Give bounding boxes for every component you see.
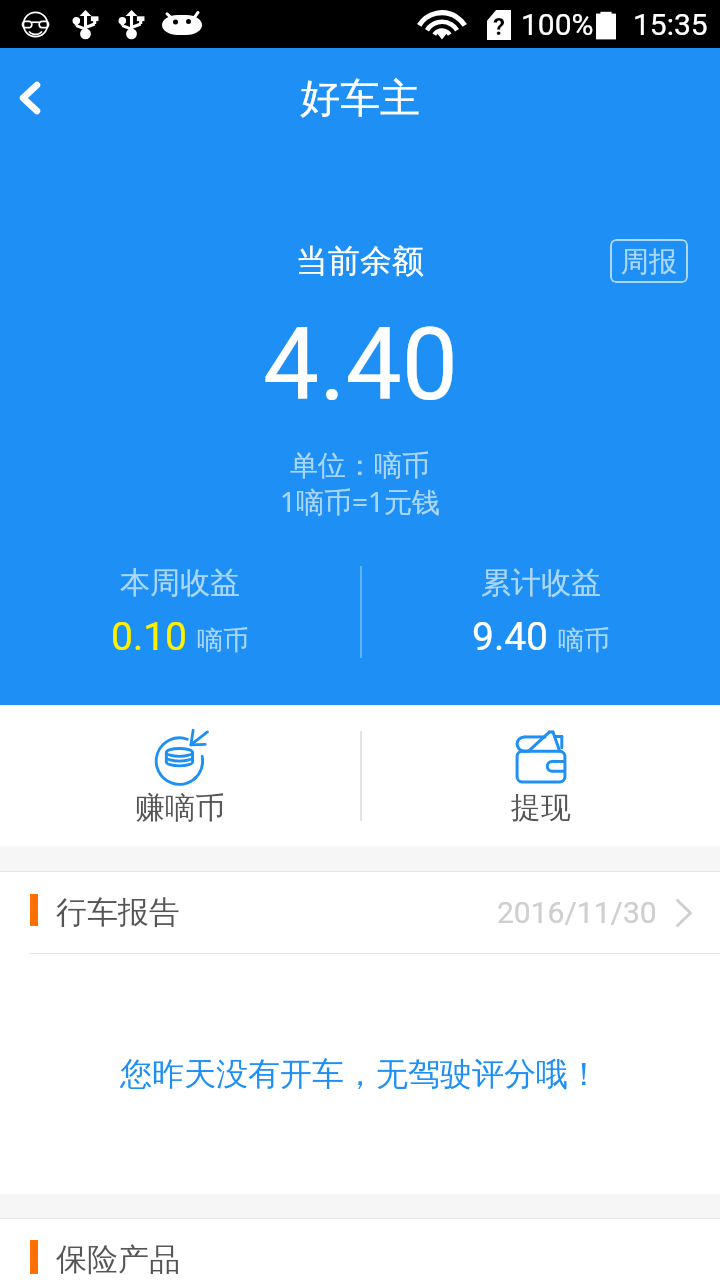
staticText: 单位：嘀币 [290, 448, 430, 483]
staticText: 9.40 [472, 614, 549, 660]
button[interactable]: 行车报告 [0, 872, 720, 953]
staticText: 提现 [511, 789, 571, 827]
staticText: 2016/11/30 [497, 895, 657, 930]
staticText: 保险产品 [56, 1240, 180, 1279]
button[interactable]: Back [0, 48, 60, 148]
staticText: 15:35 [633, 7, 708, 42]
staticText: 好车主 [300, 73, 420, 123]
staticText: 累计收益 [481, 564, 601, 602]
staticText: 赚嘀币 [135, 789, 225, 827]
button[interactable]: 保险产品 [0, 1219, 720, 1280]
staticText: 1嘀币=1元钱 [280, 482, 441, 520]
staticText: 0.10 [111, 614, 188, 660]
staticText: 本周收益 [120, 564, 240, 602]
button[interactable]: 周报 [610, 239, 688, 283]
staticText: ? [493, 13, 505, 41]
button[interactable]: 提现 [361, 705, 720, 846]
staticText: 周报 [621, 244, 677, 279]
staticText: 100% [521, 7, 594, 42]
staticText: 嘀币 [558, 624, 610, 657]
staticText: 当前余额 [296, 241, 424, 281]
button[interactable]: 赚嘀币 [0, 705, 359, 846]
staticText: 您昨天没有开车，无驾驶评分哦！ [120, 1054, 600, 1094]
staticText: 4.40 [263, 306, 458, 423]
staticText: 嘀币 [197, 624, 249, 657]
staticText: 行车报告 [56, 893, 180, 932]
